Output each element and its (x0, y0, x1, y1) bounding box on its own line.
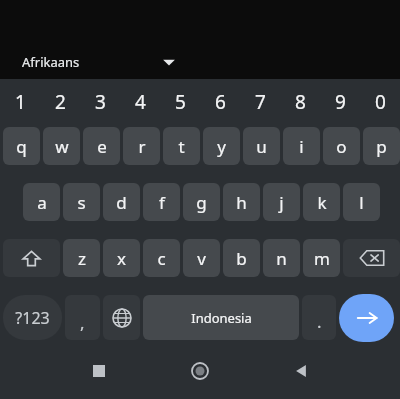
button[interactable]: Shift (3, 239, 60, 277)
staticText: m (314, 247, 330, 270)
staticText: 4 (135, 89, 146, 115)
button[interactable]: z (63, 239, 100, 277)
staticText: t (178, 135, 185, 158)
staticText: 5 (175, 89, 186, 115)
button[interactable]: s (63, 183, 100, 221)
button[interactable]: ?123 (3, 295, 62, 340)
button[interactable]: w (43, 127, 80, 165)
button[interactable]: y (203, 127, 240, 165)
button[interactable]: t (163, 127, 200, 165)
staticText: k (317, 191, 327, 214)
button[interactable]: 5 (160, 79, 200, 125)
staticText: x (117, 247, 126, 270)
button[interactable]: 7 (240, 79, 280, 125)
button[interactable]: Comma (65, 295, 100, 340)
staticText: 6 (215, 89, 226, 115)
button[interactable]: p (363, 127, 400, 165)
button[interactable]: g (183, 183, 220, 221)
button[interactable]: u (243, 127, 280, 165)
button[interactable]: a (23, 183, 60, 221)
staticText: 2 (55, 89, 66, 115)
staticText: d (116, 191, 127, 214)
staticText: p (376, 135, 387, 158)
staticText: b (236, 247, 247, 270)
button[interactable]: h (223, 183, 260, 221)
button[interactable]: 8 (280, 79, 320, 125)
button[interactable]: v (183, 239, 220, 277)
staticText: 8 (295, 89, 306, 115)
button[interactable]: e (83, 127, 120, 165)
button[interactable]: q (3, 127, 40, 165)
staticText: g (196, 191, 207, 214)
button[interactable]: d (103, 183, 140, 221)
button[interactable]: l (343, 183, 380, 221)
staticText: e (97, 135, 107, 158)
staticText: w (55, 135, 69, 158)
button[interactable]: c (143, 239, 180, 277)
button[interactable]: Indonesia (143, 295, 299, 340)
button[interactable]: 1 (0, 79, 40, 125)
button[interactable]: Enter (339, 294, 394, 342)
staticText: . (317, 310, 322, 333)
staticText: 9 (335, 89, 346, 115)
button[interactable]: 0 (360, 79, 400, 125)
staticText: 7 (255, 89, 266, 115)
button[interactable]: o (323, 127, 360, 165)
staticText: r (138, 135, 146, 158)
button[interactable]: Afrikaans (0, 48, 400, 76)
button[interactable]: m (303, 239, 340, 277)
staticText: u (256, 135, 267, 158)
button[interactable]: 2 (40, 79, 80, 125)
staticText: Indonesia (191, 309, 252, 327)
button[interactable]: Home (178, 349, 222, 393)
button[interactable]: 4 (120, 79, 160, 125)
button[interactable]: i (283, 127, 320, 165)
staticText: a (37, 191, 47, 214)
staticText: c (157, 247, 166, 270)
staticText: s (77, 191, 86, 214)
button[interactable]: 6 (200, 79, 240, 125)
button[interactable]: b (223, 239, 260, 277)
button[interactable]: x (103, 239, 140, 277)
button[interactable]: Back (279, 349, 323, 393)
button[interactable]: 9 (320, 79, 360, 125)
button[interactable]: j (263, 183, 300, 221)
staticText: ?123 (15, 307, 50, 329)
staticText: o (336, 135, 347, 158)
button[interactable]: r (123, 127, 160, 165)
staticText: j (279, 191, 284, 214)
staticText: h (236, 191, 247, 214)
staticText: Afrikaans (22, 53, 80, 71)
staticText: i (299, 135, 304, 158)
button[interactable]: Period (302, 295, 336, 340)
staticText: f (159, 191, 165, 214)
button[interactable]: Recent apps (77, 349, 121, 393)
staticText: y (217, 135, 226, 158)
staticText: 0 (375, 89, 386, 115)
button[interactable]: f (143, 183, 180, 221)
staticText: l (359, 191, 364, 214)
staticText: z (78, 247, 86, 270)
staticText: v (197, 247, 206, 270)
staticText: 1 (15, 89, 26, 115)
button[interactable]: Switch language (103, 295, 140, 340)
button[interactable]: 3 (80, 79, 120, 125)
staticText: n (276, 247, 287, 270)
staticText: 3 (95, 89, 106, 115)
staticText: , (80, 311, 85, 334)
button[interactable]: n (263, 239, 300, 277)
button[interactable]: Backspace (343, 239, 400, 277)
button[interactable]: k (303, 183, 340, 221)
staticText: q (16, 135, 27, 158)
